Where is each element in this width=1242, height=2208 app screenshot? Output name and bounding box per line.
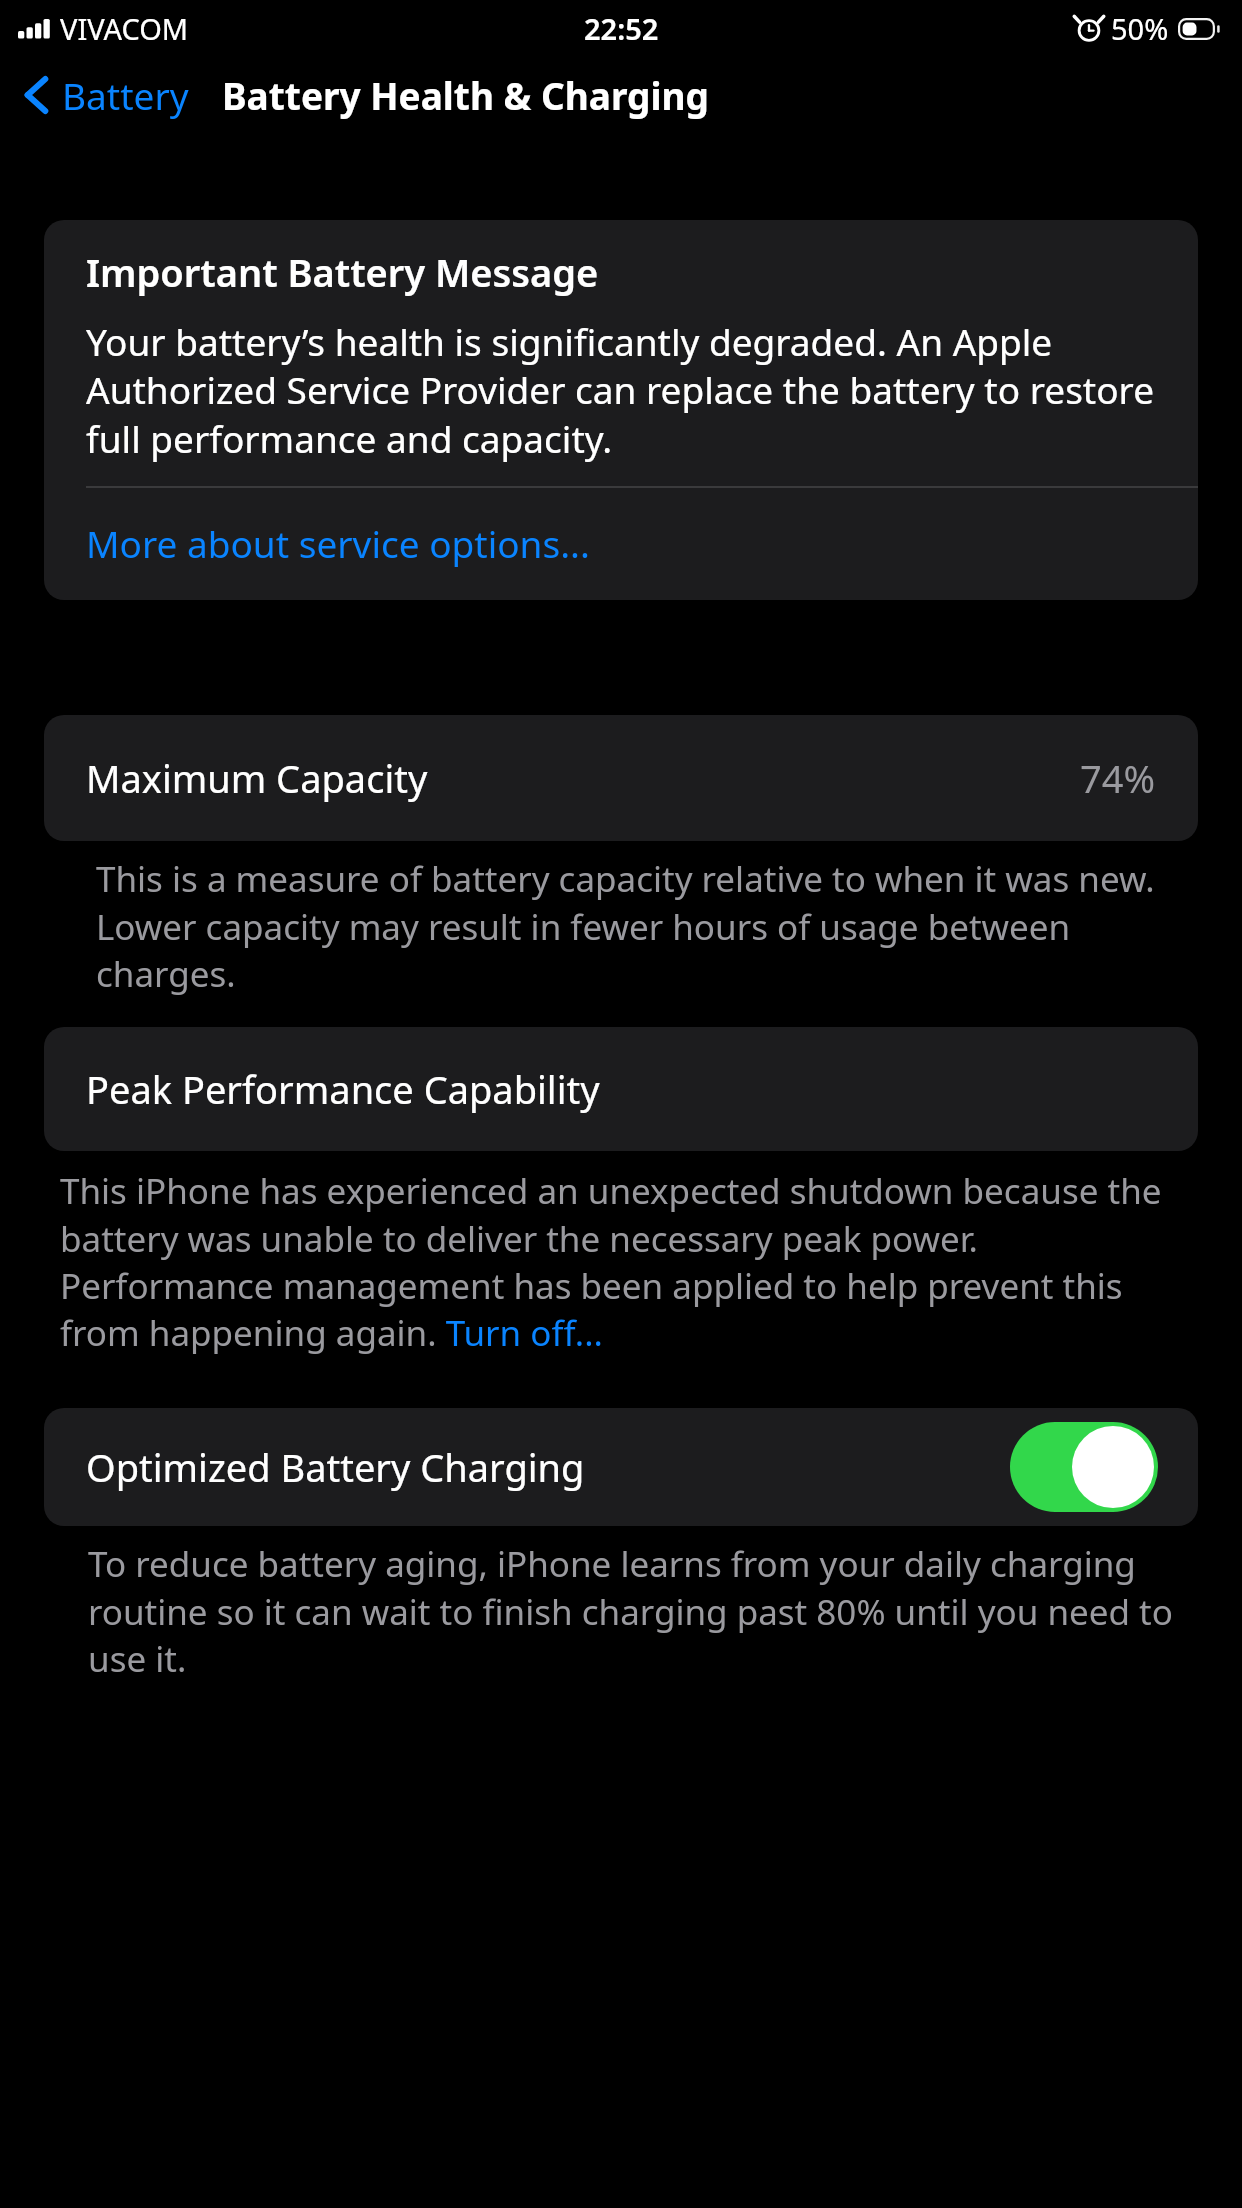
staticText: Your battery’s health is significantly d… [86, 316, 1162, 464]
staticText: 50% [1111, 9, 1169, 48]
staticText: 74% [1080, 752, 1156, 804]
button[interactable]: Optimized Battery Charging toggle, on [1010, 1422, 1158, 1512]
staticText: Important Battery Message [86, 246, 599, 298]
button[interactable]: Optimized Battery Charging [44, 1408, 1198, 1526]
staticText: 22:52 [584, 9, 659, 48]
other: Back [24, 74, 50, 116]
button[interactable]: More about service options... [44, 488, 1198, 600]
staticText: To reduce battery aging, iPhone learns f… [88, 1540, 1188, 1682]
staticText: This iPhone has experienced an unexpecte… [60, 1167, 1194, 1356]
staticText: Battery [62, 70, 189, 120]
staticText: This is a measure of battery capacity re… [96, 855, 1188, 997]
button[interactable]: Back [0, 62, 199, 128]
staticText: Maximum Capacity [86, 752, 428, 804]
staticText: More about service options... [86, 518, 590, 568]
staticText: Optimized Battery Charging [86, 1441, 585, 1493]
staticText: Battery Health & Charging [222, 70, 709, 120]
staticText: Peak Performance Capability [86, 1063, 600, 1115]
button[interactable]: Peak Performance Capability [44, 1027, 1198, 1151]
staticText: VIVACOM [60, 9, 189, 48]
button[interactable]: Maximum Capacity [44, 715, 1198, 841]
